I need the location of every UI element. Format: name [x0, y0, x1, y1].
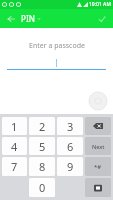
button[interactable]: PIN: [21, 13, 41, 24]
button[interactable]: 4: [2, 137, 27, 155]
staticText: 3: [67, 119, 74, 134]
staticText: *#: [94, 163, 102, 171]
staticText: 9: [67, 159, 74, 174]
staticText: 8: [39, 159, 46, 174]
staticText: 10:01 AM: [89, 1, 111, 8]
staticText: 5: [39, 139, 46, 154]
button[interactable]: Backspace: [85, 117, 111, 135]
button[interactable]: Help: [89, 92, 107, 110]
staticText: 6: [67, 139, 74, 154]
button[interactable]: Symbols: [85, 157, 111, 176]
staticText: 4: [11, 139, 18, 154]
button[interactable]: 7: [2, 157, 27, 176]
button[interactable]: 3: [57, 117, 83, 135]
button[interactable]: 8: [29, 157, 55, 176]
staticText: 1: [11, 119, 18, 134]
staticText: Next: [92, 143, 105, 150]
staticText: 7: [11, 159, 18, 174]
staticText: 2: [39, 119, 46, 134]
staticText: Enter a passcode: [29, 41, 85, 51]
button[interactable]: 0: [29, 178, 55, 197]
button[interactable]: 1: [2, 117, 27, 135]
staticText: PIN: [21, 13, 35, 24]
button[interactable]: Confirm: [95, 12, 109, 26]
staticText: 0: [39, 180, 46, 195]
button[interactable]: Switch keyboard: [85, 178, 111, 197]
button[interactable]: Back: [4, 12, 18, 26]
button[interactable]: 2: [29, 117, 55, 135]
button[interactable]: 9: [57, 157, 83, 176]
button[interactable]: 5: [29, 137, 55, 155]
button[interactable]: Next: [85, 137, 111, 155]
button[interactable]: 6: [57, 137, 83, 155]
